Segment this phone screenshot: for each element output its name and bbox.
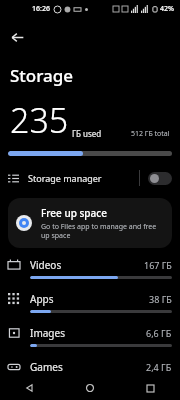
button[interactable]: Recents — [120, 376, 180, 400]
staticText: Videos — [30, 258, 62, 272]
staticText: 42% — [160, 4, 174, 14]
staticText: Images — [30, 326, 65, 340]
button[interactable]: Images — [0, 322, 180, 356]
button[interactable]: Apps — [0, 288, 180, 322]
button[interactable]: Other — [0, 390, 180, 400]
button[interactable]: Videos — [0, 254, 180, 288]
button[interactable]: Home — [60, 376, 120, 400]
button[interactable]: Back — [4, 24, 30, 50]
staticText: 512 ГБ total — [131, 129, 170, 139]
staticText: 2,4 ГБ — [146, 361, 172, 373]
staticText: 16:26 — [32, 4, 50, 14]
staticText: Go to Files app to manage and free up sp… — [41, 222, 164, 240]
button[interactable]: Back — [0, 376, 60, 400]
staticText: Storage — [10, 64, 74, 87]
button[interactable]: Storage manager — [0, 166, 180, 190]
staticText: 167 ГБ — [144, 259, 172, 271]
staticText: 510 МБ — [140, 390, 172, 400]
staticText: Apps — [30, 292, 54, 306]
button[interactable]: Free up space — [8, 198, 172, 248]
staticText: Free up space — [41, 206, 107, 220]
staticText: 38 ГБ — [149, 293, 172, 305]
button[interactable]: Storage manager toggle — [148, 172, 172, 185]
staticText: Games — [30, 360, 63, 374]
staticText: ГБ used — [72, 128, 102, 139]
staticText: Other — [30, 390, 58, 400]
staticText: 235 — [10, 97, 69, 143]
staticText: Storage manager — [28, 172, 102, 184]
button[interactable]: Games — [0, 356, 180, 390]
staticText: 6,6 ГБ — [146, 327, 172, 339]
